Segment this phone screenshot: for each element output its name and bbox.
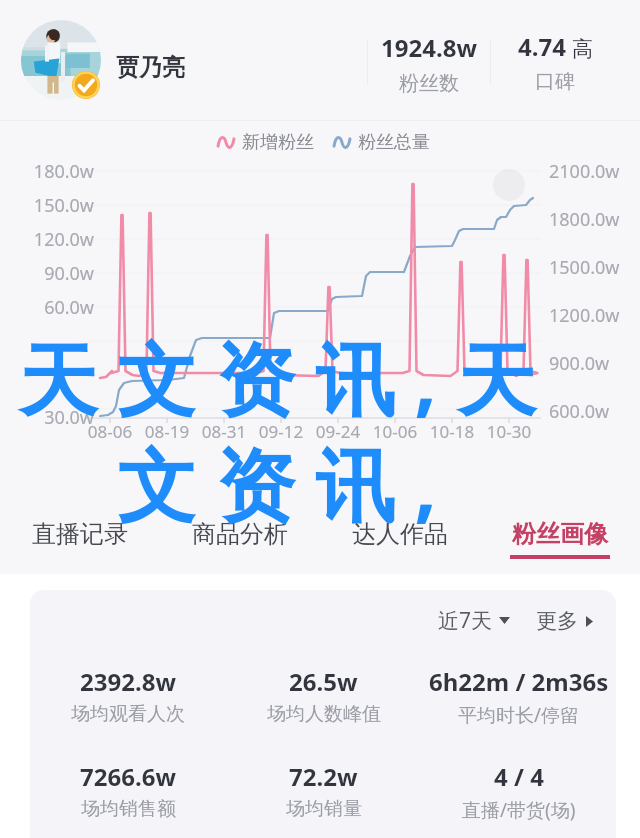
button[interactable]: 6h22m / 2m36s — [421, 665, 616, 728]
button[interactable]: 粉丝画像 — [480, 518, 640, 574]
button[interactable]: 72.2w — [226, 760, 421, 821]
button[interactable]: 7266.6w — [30, 760, 226, 821]
staticText: 更多 — [536, 608, 578, 634]
staticText: 09-24 — [308, 420, 368, 443]
staticText: 6h22m / 2m36s — [429, 665, 609, 698]
staticText: 4.74 — [518, 30, 566, 63]
button[interactable]: 2392.8w — [30, 665, 226, 726]
staticText: 近7天 — [438, 606, 493, 635]
button[interactable]: 商品分析 — [160, 518, 320, 574]
staticText: 粉丝画像 — [512, 519, 608, 549]
staticText: 场均观看人次 — [71, 702, 185, 726]
staticText: 商品分析 — [192, 519, 288, 549]
staticText: 30.0w — [10, 405, 94, 430]
staticText: 场均销量 — [286, 797, 362, 821]
staticText: 1500.0w — [549, 255, 620, 280]
staticText: 900.0w — [549, 351, 610, 376]
staticText: 直播记录 — [32, 519, 128, 549]
button[interactable]: 近7天 — [438, 606, 510, 635]
button[interactable]: 4.74 — [490, 0, 620, 120]
staticText: 10-18 — [422, 420, 482, 443]
button[interactable]: 1924.8w — [367, 0, 490, 120]
staticText: 口碑 — [535, 69, 575, 94]
button[interactable]: 4 / 4 — [421, 760, 616, 823]
staticText: 文资讯, — [117, 430, 457, 538]
staticText: 新增粉丝 — [242, 131, 314, 154]
staticText: 90.0w — [10, 261, 94, 286]
staticText: 10-30 — [479, 420, 539, 443]
staticText: 2392.8w — [80, 665, 176, 698]
staticText: 60.0w — [10, 295, 94, 320]
staticText: 高 — [572, 36, 593, 62]
staticText: 180.0w — [10, 159, 94, 184]
staticText: 08-31 — [194, 420, 254, 443]
button[interactable]: 贾乃亮 — [116, 53, 185, 82]
staticText: 场均人数峰值 — [267, 702, 381, 726]
staticText: 场均销售额 — [81, 797, 176, 821]
staticText: 1800.0w — [549, 207, 620, 232]
staticText: 粉丝数 — [399, 71, 459, 96]
staticText: 08-06 — [80, 420, 140, 443]
staticText: 天文资讯,天 — [18, 324, 556, 432]
staticText: 7266.6w — [80, 760, 176, 793]
button[interactable]: 直播记录 — [0, 518, 160, 574]
staticText: 600.0w — [549, 399, 610, 424]
staticText: 08-19 — [137, 420, 197, 443]
staticText: 平均时长/停留 — [458, 702, 580, 728]
staticText: 26.5w — [289, 665, 358, 698]
staticText: 贾乃亮 — [116, 53, 185, 82]
staticText: 粉丝总量 — [358, 131, 430, 154]
staticText: 达人作品 — [352, 519, 448, 549]
staticText: 直播/带货(场) — [462, 797, 576, 823]
staticText: 4 / 4 — [494, 760, 544, 793]
button[interactable]: 新增粉丝 — [217, 131, 314, 154]
staticText: 10-06 — [365, 420, 425, 443]
other: Verified account — [72, 71, 100, 99]
button[interactable]: 粉丝总量 — [333, 131, 430, 154]
button[interactable]: 达人作品 — [320, 518, 480, 574]
staticText: 1924.8w — [381, 31, 477, 64]
staticText: 09-12 — [251, 420, 311, 443]
staticText: 150.0w — [10, 193, 94, 218]
button[interactable]: 更多 — [536, 608, 593, 634]
staticText: 1200.0w — [549, 303, 620, 328]
button[interactable]: 26.5w — [226, 665, 421, 726]
staticText: 2100.0w — [549, 159, 620, 184]
staticText: 72.2w — [289, 760, 358, 793]
staticText: 120.0w — [10, 227, 94, 252]
